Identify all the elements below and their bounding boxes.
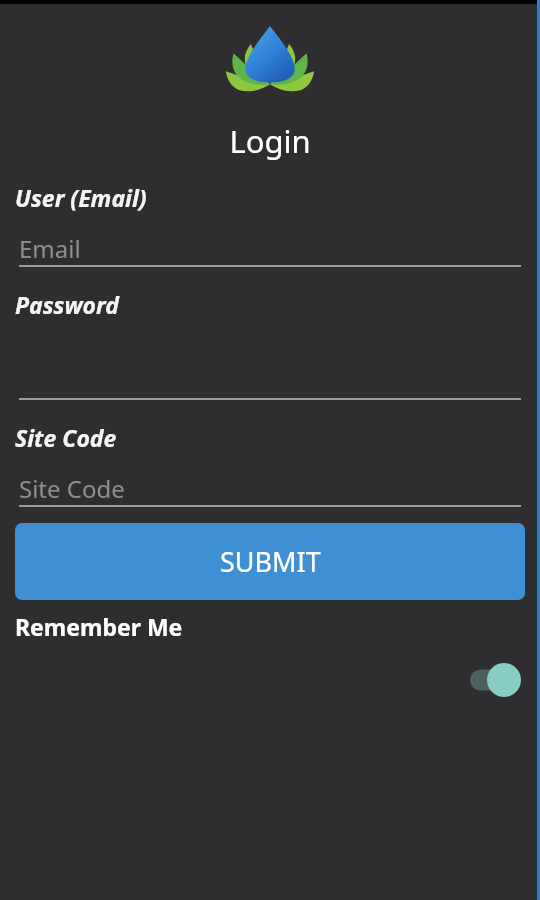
staticText: Email [19, 232, 81, 265]
button[interactable]: SUBMIT [15, 523, 525, 600]
staticText: SUBMIT [220, 543, 321, 580]
staticText: User (Email) [15, 182, 147, 213]
button[interactable]: Email [19, 231, 521, 267]
staticText: Remember Me [15, 611, 183, 642]
button[interactable] [19, 364, 521, 400]
staticText: Password [15, 289, 119, 320]
staticText: Site Code [15, 422, 117, 453]
button[interactable]: Remember Me toggle [468, 660, 524, 700]
button[interactable]: Site Code [19, 471, 521, 507]
staticText: Login [0, 120, 540, 162]
staticText: Site Code [19, 472, 125, 505]
